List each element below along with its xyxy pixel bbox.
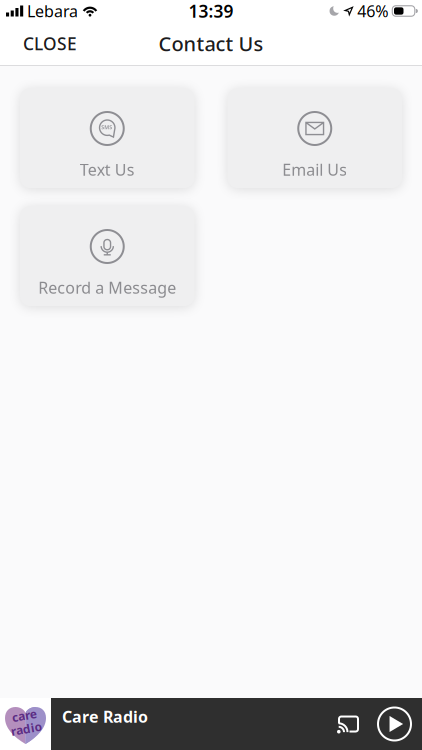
- staticText: 13:39: [188, 0, 233, 22]
- staticText: Care Radio: [62, 706, 148, 727]
- button[interactable]: Record a Message: [20, 206, 194, 306]
- button[interactable]: CLOSE: [0, 25, 77, 64]
- button[interactable]: Cast: [334, 715, 363, 732]
- staticText: CLOSE: [23, 32, 77, 55]
- staticText: Email Us: [282, 159, 347, 180]
- staticText: SMS: [101, 124, 112, 131]
- staticText: care: [13, 707, 38, 723]
- staticText: Text Us: [80, 159, 135, 180]
- staticText: radio: [9, 721, 41, 737]
- staticText: Contact Us: [158, 30, 263, 57]
- staticText: Lebara: [27, 0, 78, 22]
- button[interactable]: Play: [363, 707, 422, 740]
- staticText: Record a Message: [38, 277, 176, 298]
- button[interactable]: Email Us: [227, 88, 402, 188]
- staticText: 46%: [357, 0, 388, 22]
- button[interactable]: SMS: [20, 88, 194, 188]
